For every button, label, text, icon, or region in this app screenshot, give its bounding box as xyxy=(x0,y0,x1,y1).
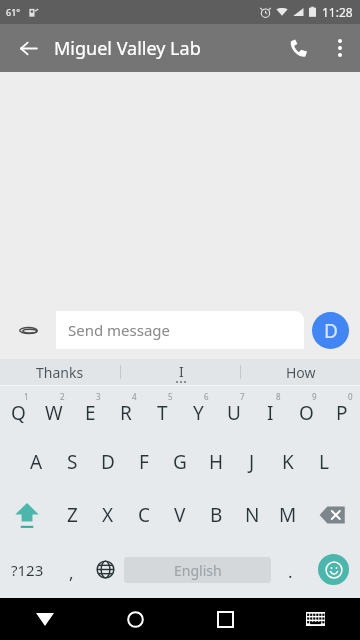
button[interactable]: 7 xyxy=(216,386,252,435)
staticText: 6 xyxy=(204,391,209,402)
staticText: Send message xyxy=(68,320,171,340)
button[interactable]: Home xyxy=(90,598,180,640)
button[interactable]: X xyxy=(90,488,126,541)
button[interactable]: Send message xyxy=(56,311,304,349)
button[interactable]: I xyxy=(121,359,240,385)
button[interactable]: More options xyxy=(320,28,360,68)
button[interactable]: V xyxy=(162,488,198,541)
staticText: J xyxy=(249,449,255,475)
button[interactable]: B xyxy=(198,488,234,541)
button[interactable]: 2 xyxy=(36,386,72,435)
button[interactable]: G xyxy=(162,435,198,488)
button[interactable]: Shift xyxy=(0,488,54,541)
button[interactable]: Switch keyboard xyxy=(270,598,360,640)
staticText: H xyxy=(209,449,224,475)
staticText: A xyxy=(30,449,43,475)
button[interactable]: 1 xyxy=(0,386,36,435)
button[interactable]: F xyxy=(126,435,162,488)
button[interactable]: L xyxy=(306,435,342,488)
button[interactable]: 4 xyxy=(108,386,144,435)
staticText: D xyxy=(101,449,115,475)
staticText: X xyxy=(102,502,114,528)
staticText: 11:28 xyxy=(322,4,353,20)
staticText: M xyxy=(279,502,297,528)
button[interactable]: , xyxy=(54,541,88,598)
staticText: L xyxy=(319,449,329,475)
button[interactable]: 0 xyxy=(324,386,360,435)
staticText: T xyxy=(157,400,168,426)
button[interactable]: Thanks xyxy=(0,359,120,385)
button[interactable]: 3 xyxy=(72,386,108,435)
button[interactable]: Z xyxy=(54,488,90,541)
staticText: V xyxy=(174,502,186,528)
staticText: G xyxy=(173,449,187,475)
staticText: I xyxy=(267,400,274,426)
button[interactable]: Call xyxy=(276,26,320,70)
staticText: B xyxy=(210,502,223,528)
staticText: E xyxy=(85,400,96,426)
button[interactable]: 6 xyxy=(180,386,216,435)
staticText: 2 xyxy=(60,391,65,402)
staticText: D xyxy=(324,318,338,344)
button[interactable]: Change language xyxy=(88,541,122,598)
button[interactable]: Backspace xyxy=(306,488,360,541)
staticText: F xyxy=(139,449,149,475)
button[interactable]: J xyxy=(234,435,270,488)
staticText: 1 xyxy=(24,391,29,402)
staticText: Miguel Valley Lab xyxy=(54,36,201,61)
button[interactable]: H xyxy=(198,435,234,488)
staticText: How xyxy=(286,363,316,382)
button[interactable]: Back xyxy=(8,28,48,68)
button[interactable]: Hide keyboard xyxy=(0,598,90,640)
button[interactable]: ?123 xyxy=(0,541,54,598)
button[interactable]: English xyxy=(124,557,271,583)
button[interactable]: A xyxy=(18,435,54,488)
staticText: R xyxy=(120,400,132,426)
staticText: English xyxy=(174,561,222,580)
button[interactable]: . xyxy=(273,541,307,598)
button[interactable]: D xyxy=(312,312,349,349)
staticText: 7 xyxy=(240,391,245,402)
staticText: U xyxy=(227,400,241,426)
staticText: Q xyxy=(11,400,26,426)
button[interactable]: 9 xyxy=(288,386,324,435)
button[interactable]: C xyxy=(126,488,162,541)
staticText: 9 xyxy=(312,391,317,402)
button[interactable]: 5 xyxy=(144,386,180,435)
staticText: , xyxy=(69,561,74,584)
staticText: S xyxy=(67,449,78,475)
staticText: 8 xyxy=(276,391,281,402)
staticText: W xyxy=(45,400,63,426)
button[interactable]: How xyxy=(241,359,360,385)
button[interactable]: M xyxy=(270,488,306,541)
staticText: C xyxy=(138,502,151,528)
button[interactable]: Attach xyxy=(10,312,46,348)
button[interactable]: K xyxy=(270,435,306,488)
staticText: 4 xyxy=(132,391,137,402)
staticText: 0 xyxy=(348,391,353,402)
button[interactable]: S xyxy=(54,435,90,488)
staticText: K xyxy=(282,449,294,475)
staticText: Y xyxy=(193,400,204,426)
button[interactable]: Emoji xyxy=(307,541,360,598)
button[interactable]: N xyxy=(234,488,270,541)
staticText: . xyxy=(288,560,293,583)
staticText: P xyxy=(336,400,348,426)
staticText: O xyxy=(299,400,314,426)
button[interactable]: D xyxy=(90,435,126,488)
staticText: ?123 xyxy=(11,560,44,580)
staticText: 3 xyxy=(96,391,101,402)
staticText: 61° xyxy=(6,6,21,18)
staticText: N xyxy=(245,502,260,528)
button[interactable]: Recents xyxy=(180,598,270,640)
staticText: Z xyxy=(67,502,78,528)
button[interactable]: 8 xyxy=(252,386,288,435)
staticText: Thanks xyxy=(36,363,84,382)
staticText: 5 xyxy=(168,391,173,402)
staticText: I xyxy=(179,362,184,381)
